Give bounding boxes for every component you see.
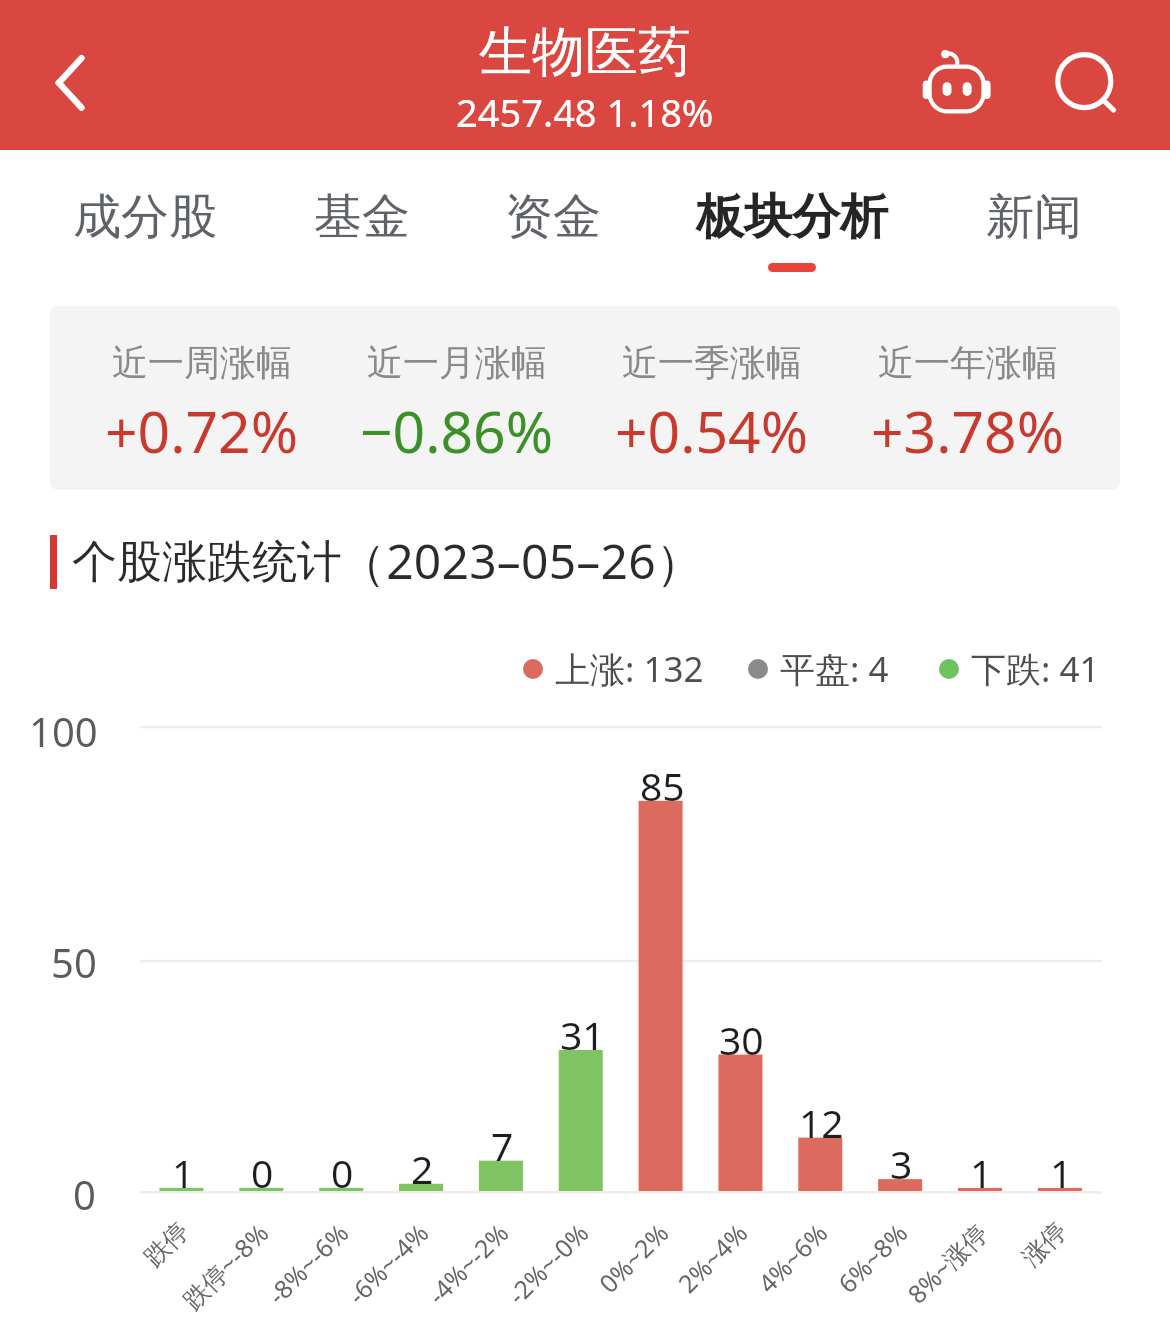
staticText: 板块分析 bbox=[696, 187, 888, 247]
staticText: −0.86% bbox=[360, 392, 554, 470]
staticText: 涨停 bbox=[1016, 1215, 1073, 1273]
staticText: 1 bbox=[970, 1146, 993, 1199]
staticText: 近一月涨幅 bbox=[367, 340, 547, 385]
staticText: 资金 bbox=[505, 187, 601, 247]
staticText: 下跌: 41 bbox=[971, 645, 1100, 693]
button[interactable]: 成分股 bbox=[25, 150, 265, 290]
staticText: 0%~2% bbox=[591, 1216, 675, 1300]
staticText: +0.72% bbox=[105, 392, 299, 470]
staticText: 个股涨跌统计 bbox=[72, 534, 342, 591]
staticText: -4%~-2% bbox=[420, 1216, 515, 1311]
staticText: 新闻 bbox=[986, 187, 1082, 247]
staticText: 50 bbox=[51, 935, 97, 989]
button[interactable]: 资金 bbox=[433, 150, 673, 290]
staticText: 1 bbox=[1050, 1146, 1073, 1199]
staticText: 0 bbox=[251, 1146, 274, 1199]
staticText: 0 bbox=[331, 1146, 354, 1199]
staticText: 近一周涨幅 bbox=[112, 340, 292, 385]
button[interactable]: Search bbox=[1046, 42, 1126, 122]
staticText: 2%~4% bbox=[670, 1216, 754, 1300]
staticText: 基金 bbox=[314, 187, 410, 247]
staticText: 跌停 bbox=[138, 1215, 195, 1273]
staticText: 近一年涨幅 bbox=[878, 340, 1058, 385]
staticText: 3 bbox=[890, 1137, 913, 1190]
staticText: 2 bbox=[411, 1142, 434, 1195]
staticText: +3.78% bbox=[871, 392, 1065, 470]
staticText: 100 bbox=[29, 704, 98, 758]
staticText: 成分股 bbox=[73, 187, 217, 247]
staticText: 0 bbox=[73, 1167, 96, 1221]
staticText: （2023–05–26） bbox=[338, 528, 705, 594]
button[interactable]: AI assistant bbox=[914, 42, 1000, 122]
staticText: 2457.48 1.18% bbox=[456, 86, 714, 138]
staticText: -8%~-6% bbox=[260, 1216, 355, 1311]
staticText: 8%~涨停 bbox=[899, 1216, 994, 1311]
staticText: 6%~8% bbox=[830, 1216, 914, 1300]
staticText: 85 bbox=[640, 759, 685, 812]
staticText: 31 bbox=[560, 1008, 605, 1061]
staticText: -6%~-4% bbox=[340, 1216, 435, 1311]
button[interactable]: Back bbox=[30, 44, 100, 122]
staticText: 上涨: 132 bbox=[555, 645, 704, 693]
staticText: 7 bbox=[491, 1119, 514, 1172]
staticText: 生物医药 bbox=[479, 19, 691, 86]
staticText: 30 bbox=[719, 1013, 764, 1066]
staticText: +0.54% bbox=[615, 392, 809, 470]
staticText: -2%~-0% bbox=[500, 1216, 595, 1311]
staticText: 1 bbox=[172, 1146, 195, 1199]
staticText: 近一季涨幅 bbox=[622, 340, 802, 385]
staticText: 12 bbox=[799, 1096, 844, 1149]
button[interactable]: 板块分析 bbox=[672, 150, 912, 290]
button[interactable]: 基金 bbox=[242, 150, 482, 290]
staticText: 跌停~-8% bbox=[175, 1216, 275, 1316]
staticText: 4%~6% bbox=[750, 1216, 834, 1300]
button[interactable]: 新闻 bbox=[914, 150, 1154, 290]
staticText: 平盘: 4 bbox=[780, 645, 889, 693]
